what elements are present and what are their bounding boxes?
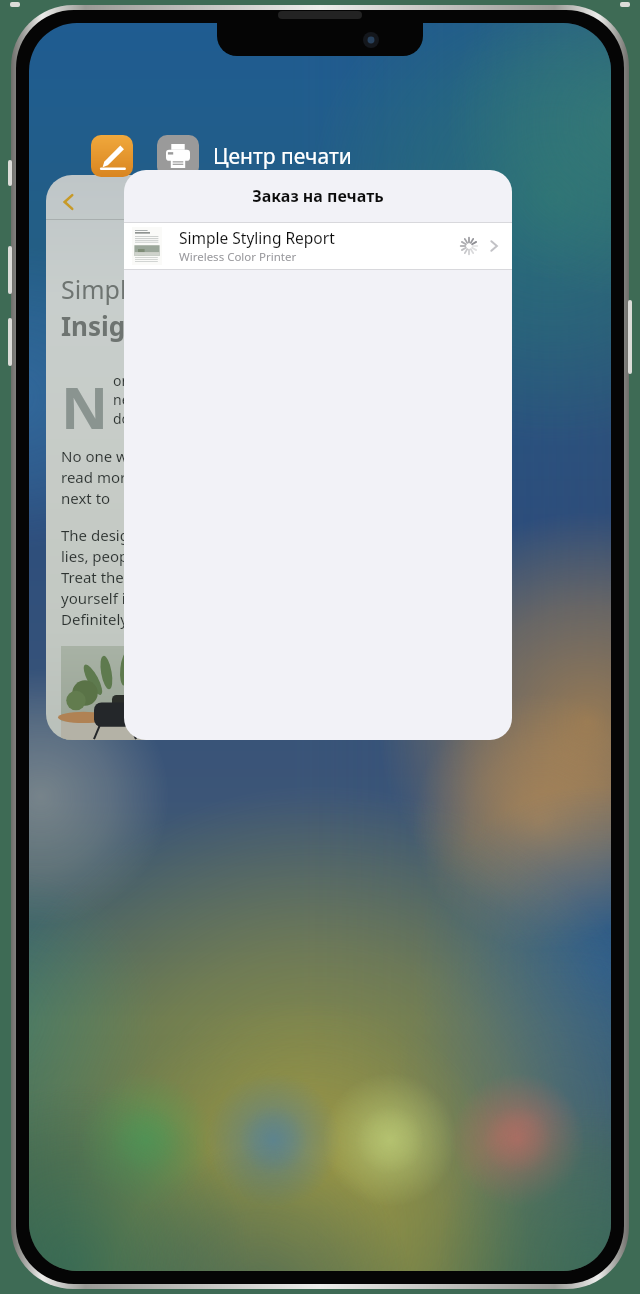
staticText: next to (61, 488, 111, 508)
staticText: Insights (61, 308, 167, 343)
staticText: Treat the (61, 567, 124, 587)
staticText: N (61, 367, 109, 446)
button[interactable]: Simple Styling Report (124, 223, 512, 269)
staticText: dolor (113, 409, 148, 428)
staticText: yourself in (61, 588, 135, 608)
button[interactable]: Simple Styling (46, 175, 274, 740)
staticText: The design (61, 525, 139, 545)
staticText: Центр печати (213, 142, 352, 171)
button[interactable]: Print Center (157, 135, 199, 177)
staticText: No one will (61, 446, 140, 466)
staticText: Заказ на печать (252, 185, 384, 207)
staticText: Wireless Color Printer (179, 249, 297, 265)
staticText: Simple Styling (61, 272, 227, 306)
staticText: lies, people (61, 546, 141, 566)
staticText: Simple Styling Report (179, 227, 335, 248)
staticText: on (113, 371, 131, 390)
button[interactable]: Pages (91, 135, 133, 177)
staticText: Definitely (61, 609, 128, 629)
other: Printing (460, 237, 478, 255)
staticText: neque (113, 390, 155, 409)
staticText: read more (61, 467, 135, 487)
